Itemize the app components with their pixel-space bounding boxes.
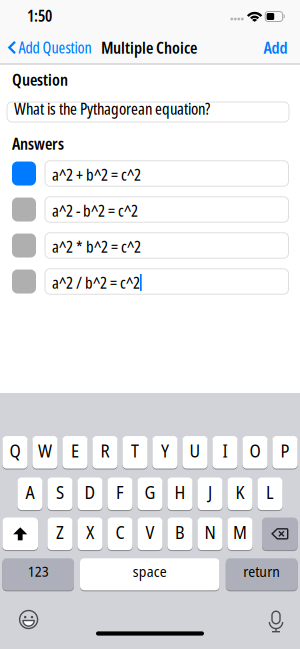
button[interactable]: I: [212, 436, 238, 469]
button[interactable]: Shift: [2, 517, 38, 550]
button[interactable]: G: [137, 478, 163, 510]
staticText: P: [280, 439, 289, 463]
staticText: return: [243, 561, 280, 581]
button[interactable]: 123: [2, 558, 74, 590]
staticText: O: [249, 439, 260, 463]
staticText: D: [84, 480, 95, 504]
staticText: W: [38, 439, 52, 463]
staticText: F: [116, 480, 124, 504]
button[interactable]: S: [47, 478, 73, 510]
button[interactable]: N: [197, 517, 223, 550]
button[interactable]: H: [167, 478, 193, 510]
button[interactable]: L: [257, 478, 283, 510]
button[interactable]: E: [62, 436, 88, 469]
button[interactable]: F: [107, 478, 133, 510]
button[interactable]: Mark answer 1 correct: [12, 161, 36, 185]
button[interactable]: Z: [47, 517, 73, 550]
button[interactable]: K: [227, 478, 253, 510]
staticText: J: [208, 480, 212, 504]
button[interactable]: T: [122, 436, 148, 469]
button[interactable]: Emoji: [19, 609, 39, 629]
button[interactable]: Y: [152, 436, 178, 469]
button[interactable]: Mark answer 3 correct: [12, 233, 36, 257]
button[interactable]: J: [197, 478, 223, 510]
staticText: Add: [263, 36, 287, 59]
button[interactable]: Q: [2, 436, 28, 469]
button[interactable]: U: [182, 436, 208, 469]
staticText: M: [233, 520, 247, 544]
button[interactable]: X: [77, 517, 103, 550]
button[interactable]: R: [92, 436, 118, 469]
staticText: U: [189, 439, 200, 463]
button[interactable]: Mark answer 4 correct: [12, 269, 36, 293]
staticText: V: [145, 520, 154, 544]
staticText: a^2 * b^2 = c^2: [52, 236, 141, 257]
staticText: Z: [56, 520, 64, 544]
button[interactable]: D: [77, 478, 103, 510]
staticText: H: [174, 480, 185, 504]
staticText: a^2 + b^2 = c^2: [52, 164, 141, 185]
staticText: S: [56, 480, 64, 504]
staticText: Multiple Choice: [101, 36, 197, 59]
staticText: Question: [12, 68, 68, 91]
staticText: I: [222, 439, 227, 463]
staticText: R: [100, 439, 109, 463]
button[interactable]: V: [137, 517, 163, 550]
button[interactable]: What is the Pythagorean equation?: [7, 102, 289, 122]
button[interactable]: Add: [263, 36, 287, 59]
staticText: N: [204, 520, 215, 544]
button[interactable]: a^2 + b^2 = c^2: [45, 161, 288, 186]
staticText: What is the Pythagorean equation?: [14, 98, 210, 119]
staticText: 123: [28, 562, 49, 581]
button[interactable]: a^2 * b^2 = c^2: [45, 233, 288, 258]
button[interactable]: Mark answer 2 correct: [12, 197, 36, 221]
button[interactable]: O: [242, 436, 268, 469]
button[interactable]: M: [227, 517, 253, 550]
staticText: K: [235, 480, 244, 504]
staticText: a^2 / b^2 = c^2: [52, 272, 140, 293]
staticText: space: [133, 561, 167, 581]
staticText: Answers: [12, 132, 64, 155]
button[interactable]: Dictation: [266, 611, 286, 633]
staticText: L: [266, 480, 274, 504]
button[interactable]: C: [107, 517, 133, 550]
button[interactable]: return: [226, 558, 298, 590]
staticText: Add Question: [18, 37, 91, 58]
button[interactable]: A: [17, 478, 43, 510]
button[interactable]: a^2 / b^2 = c^2: [45, 269, 288, 294]
staticText: E: [71, 439, 79, 463]
staticText: B: [175, 520, 185, 544]
staticText: G: [144, 480, 155, 504]
staticText: 1:50: [27, 5, 52, 26]
staticText: C: [115, 520, 124, 544]
button[interactable]: Add Question: [8, 37, 91, 58]
button[interactable]: P: [272, 436, 298, 469]
button[interactable]: space: [80, 558, 219, 590]
staticText: X: [86, 520, 94, 544]
staticText: Y: [161, 439, 169, 463]
button[interactable]: B: [167, 517, 193, 550]
staticText: A: [25, 480, 34, 504]
button[interactable]: a^2 - b^2 = c^2: [45, 197, 288, 222]
staticText: T: [131, 439, 139, 463]
button[interactable]: W: [32, 436, 58, 469]
staticText: a^2 - b^2 = c^2: [52, 200, 138, 221]
staticText: Q: [9, 439, 20, 463]
button[interactable]: Delete: [262, 517, 298, 550]
